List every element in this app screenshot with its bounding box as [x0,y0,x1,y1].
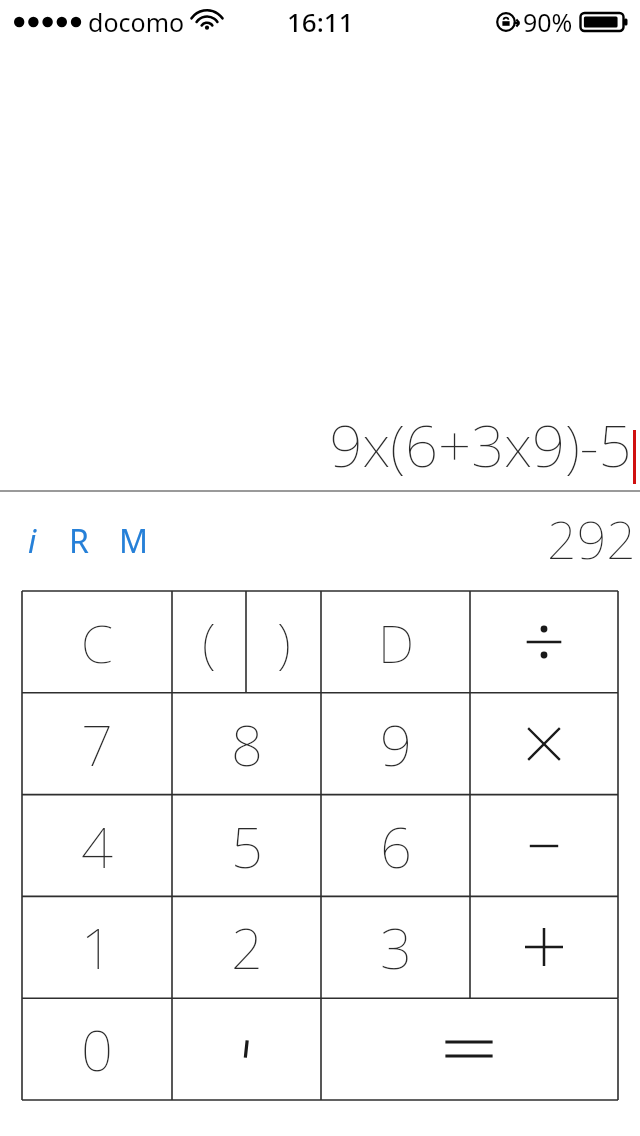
staticText: i [28,519,37,563]
button[interactable]: 3 [321,896,470,998]
staticText: D [378,607,414,678]
button[interactable]: 5 [172,795,321,897]
button[interactable]: 4 [22,795,172,897]
staticText: 7 [81,706,113,782]
button[interactable]: D [321,591,470,693]
button[interactable]: 8 [172,693,321,795]
button[interactable]: Multiply [470,693,618,795]
staticText: 16:11 [287,4,354,39]
button[interactable]: Equals [321,998,618,1100]
staticText: 5 [231,808,263,884]
button[interactable]: Decimal separator [172,998,321,1100]
button[interactable]: 0 [22,998,172,1100]
button[interactable]: Close parenthesis [246,591,321,693]
staticText: 90% [523,5,573,39]
staticText: 6 [380,808,412,884]
staticText: 3 [380,909,412,985]
staticText: docomo [88,5,185,39]
button[interactable]: 2 [172,896,321,998]
staticText: 292 [547,503,636,574]
staticText: R [69,519,89,563]
button[interactable]: Plus [470,896,618,998]
button[interactable]: Minus [470,795,618,897]
staticText: 2 [231,909,263,985]
button[interactable]: C [22,591,172,693]
button[interactable]: 6 [321,795,470,897]
staticText: 1 [81,909,113,985]
staticText: 9 [380,706,412,782]
staticText: 8 [231,706,263,782]
button[interactable]: M [109,513,159,569]
staticText: ( [202,605,216,679]
button[interactable]: 7 [22,693,172,795]
button[interactable]: Divide [470,591,618,693]
staticText: M [119,519,149,563]
staticText: 0 [81,1011,113,1087]
staticText: ) [277,605,291,679]
staticText: 4 [81,808,113,884]
button[interactable]: Open parenthesis [172,591,246,693]
staticText: C [81,607,113,678]
staticText: 9x(6+3x9)-5 [329,405,632,484]
button[interactable]: 1 [22,896,172,998]
button[interactable]: R [59,513,99,569]
button[interactable]: i [18,513,47,569]
button[interactable]: 9 [321,693,470,795]
